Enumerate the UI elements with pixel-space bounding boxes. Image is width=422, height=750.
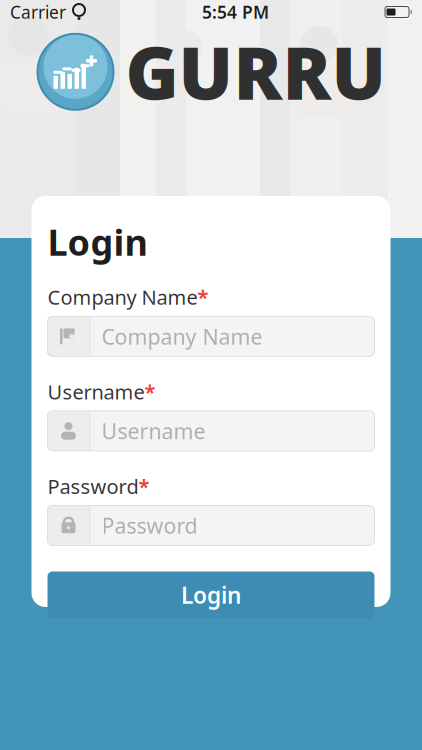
button[interactable]: Username [47,411,374,451]
staticText: Carrier [10,0,66,23]
staticText: Password [101,511,197,540]
staticText: GURRU [125,24,386,120]
button[interactable]: Company Name [47,316,374,356]
staticText: Password [47,473,138,499]
staticText: Username [101,417,205,445]
staticText: * [138,473,149,499]
staticText: Login [181,580,241,610]
staticText: Company Name [47,284,197,310]
staticText: Username [47,378,144,405]
button[interactable]: Password [47,505,374,545]
button[interactable]: Login [47,571,374,618]
staticText: Login [47,218,147,266]
staticText: 5:54 PM [202,0,269,23]
staticText: Company Name [101,322,262,350]
staticText: * [197,284,208,310]
staticText: * [144,378,155,405]
